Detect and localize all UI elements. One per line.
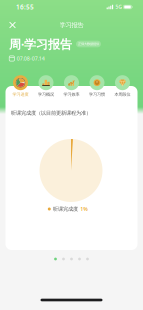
staticText: 5G: [115, 4, 121, 10]
staticText: 16:55: [16, 3, 34, 11]
staticText: 学习效率: [63, 92, 79, 97]
staticText: 07.08-07.14: [17, 55, 45, 62]
button[interactable]: Close: [4, 16, 21, 33]
button[interactable]: 学习效率: [61, 75, 82, 97]
staticText: 学习习惯: [89, 92, 105, 97]
staticText: 听课完成度（以目前更新课程为准）: [11, 110, 91, 116]
button[interactable]: 学习进度: [10, 75, 31, 97]
staticText: 本周段位: [114, 92, 130, 97]
button[interactable]: 学习习惯: [86, 75, 107, 97]
staticText: 听课完成度: [53, 206, 78, 212]
staticText: 学习概况: [38, 92, 54, 97]
button[interactable]: 本周段位: [112, 75, 133, 97]
staticText: 学习进度: [12, 92, 28, 97]
button[interactable]: 学习概况: [35, 75, 56, 97]
staticText: 1%: [80, 205, 88, 213]
staticText: 学习报告: [59, 21, 83, 29]
staticText: 正保大数据提供: [78, 42, 99, 46]
staticText: 周·学习报告: [9, 36, 72, 52]
